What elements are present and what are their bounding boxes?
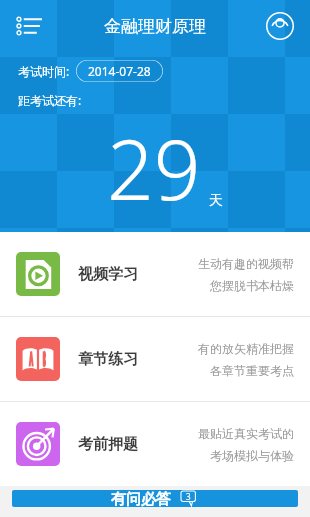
- staticText: 金融理财原理: [104, 16, 206, 37]
- staticText: 考前押题: [78, 435, 138, 454]
- staticText: 距考试还有:: [18, 92, 82, 108]
- staticText: 考试时间:: [18, 63, 70, 79]
- staticText: 考场模拟与体验: [210, 448, 294, 463]
- button[interactable]: Profile: [258, 4, 302, 48]
- staticText: 生动有趣的视频帮: [198, 256, 294, 271]
- staticText: 最贴近真实考试的: [198, 426, 294, 441]
- staticText: 章节练习: [78, 350, 138, 369]
- button[interactable]: 有问必答: [12, 490, 298, 507]
- staticText: 3: [186, 491, 191, 502]
- staticText: 您摆脱书本枯燥: [210, 278, 294, 293]
- button[interactable]: 视频学习: [0, 232, 310, 316]
- button[interactable]: Menu: [8, 4, 52, 48]
- staticText: 2014-07-28: [88, 63, 151, 79]
- staticText: 有的放矢精准把握: [198, 341, 294, 356]
- staticText: 有问必答: [111, 490, 171, 507]
- button[interactable]: 章节练习: [0, 317, 310, 401]
- staticText: 各章节重要考点: [210, 363, 294, 378]
- staticText: 视频学习: [78, 265, 138, 284]
- staticText: 29: [107, 112, 201, 224]
- button[interactable]: 考前押题: [0, 402, 310, 486]
- staticText: 天: [209, 192, 223, 210]
